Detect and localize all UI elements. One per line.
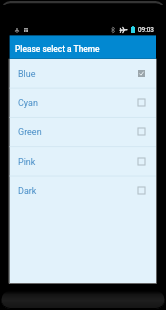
- button[interactable]: Cyan: [10, 88, 156, 117]
- staticText: Blue: [18, 69, 36, 80]
- staticText: 09:03: [138, 26, 154, 34]
- button[interactable]: Blue: [10, 59, 156, 88]
- staticText: Dark: [18, 186, 37, 197]
- other: USB connected: [15, 28, 19, 33]
- staticText: Green: [18, 127, 42, 138]
- button[interactable]: Green: [10, 117, 156, 146]
- staticText: Pink: [18, 157, 36, 168]
- staticText: Cyan: [18, 98, 38, 109]
- button[interactable]: Dark: [10, 176, 156, 205]
- button[interactable]: Please select a Theme: [10, 35, 156, 58]
- button[interactable]: Pink: [10, 147, 156, 176]
- staticText: Please select a Theme: [15, 44, 100, 54]
